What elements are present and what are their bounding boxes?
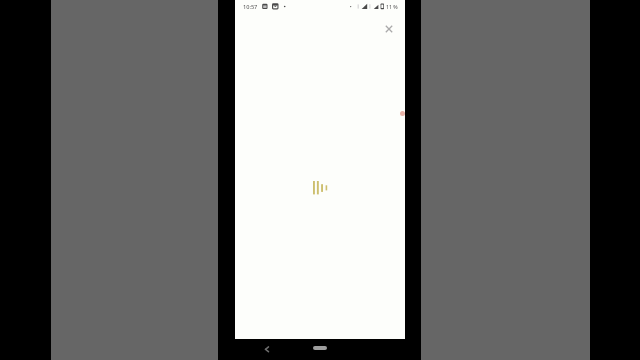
button[interactable]: Back	[261, 342, 273, 354]
staticText: 11 %	[386, 3, 398, 10]
staticText: 10:57	[243, 3, 258, 11]
button[interactable]: Home	[310, 342, 330, 352]
button[interactable]: Close	[380, 20, 397, 37]
